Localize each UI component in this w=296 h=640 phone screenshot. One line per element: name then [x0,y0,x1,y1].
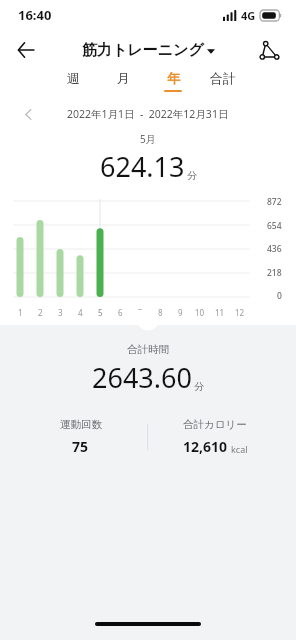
button[interactable]: 週 [52,70,94,90]
staticText: 6 [118,307,123,318]
staticText: 合計 [210,70,236,86]
staticText: 8 [158,307,163,318]
button[interactable]: Share [252,33,286,67]
button[interactable]: 筋力トレーニング [82,41,215,60]
staticText: 2643.60 [92,359,192,396]
staticText: 11 [215,307,225,318]
staticText: 12 [235,307,245,318]
button[interactable]: Back [8,32,44,68]
staticText: kcal [231,443,248,455]
staticText: 分 [187,169,197,182]
staticText: 年 [167,70,180,86]
staticText: 4 [78,307,83,318]
staticText: 月 [117,70,130,86]
staticText: 運動回数 [60,418,102,431]
staticText: 5 [98,307,103,318]
staticText: 3 [58,307,63,318]
staticText: 654 [267,220,282,232]
staticText: 10 [195,307,205,318]
staticText: 75 [72,437,89,456]
staticText: 436 [267,243,282,255]
staticText: 218 [267,267,282,279]
staticText: 筋力トレーニング [82,41,204,60]
staticText: 週 [67,70,80,86]
staticText: 872 [267,196,282,208]
staticText: 624.13 [100,148,185,185]
staticText: 2 [38,307,43,318]
staticText: 合計カロリー [183,418,247,431]
button[interactable]: Previous period [16,102,40,126]
button[interactable]: 月 [102,70,144,90]
staticText: 2022年1月1日 - 2022年12月31日 [67,107,229,121]
button[interactable]: 年 [152,70,194,92]
staticText: 分 [194,380,204,393]
staticText: 0 [277,290,282,302]
button[interactable]: 合計 [202,70,244,90]
staticText: 7 [138,307,143,318]
staticText: 1 [18,307,23,318]
staticText: 9 [178,307,183,318]
staticText: 5月 [140,132,156,146]
staticText: 合計時間 [127,343,169,356]
staticText: 12,610 [183,437,228,456]
staticText: 4G [241,8,256,23]
staticText: 16:40 [18,6,52,24]
